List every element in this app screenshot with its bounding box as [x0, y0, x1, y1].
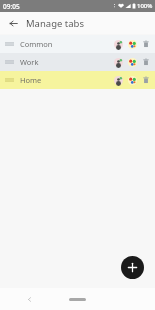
button[interactable]: Delete tab: [139, 37, 153, 51]
staticText: Home: [20, 75, 111, 85]
button[interactable]: Change color: [125, 55, 139, 69]
button[interactable]: Home: [0, 71, 155, 89]
staticText: 09:05: [3, 2, 20, 11]
button[interactable]: Back: [4, 14, 22, 32]
button[interactable]: Account: [111, 55, 125, 69]
staticText: 100%: [137, 2, 153, 10]
button[interactable]: Back: [21, 291, 37, 307]
button[interactable]: Change color: [125, 37, 139, 51]
button[interactable]: Home: [69, 298, 86, 301]
staticText: Manage tabs: [26, 17, 84, 30]
button[interactable]: Account: [111, 73, 125, 87]
button[interactable]: Work: [0, 53, 155, 71]
staticText: Work: [20, 57, 111, 67]
button[interactable]: Change color: [125, 73, 139, 87]
staticText: Common: [20, 39, 111, 49]
button[interactable]: Account: [111, 37, 125, 51]
button[interactable]: Delete tab: [139, 73, 153, 87]
button[interactable]: Add tab: [121, 256, 144, 279]
button[interactable]: Common: [0, 35, 155, 53]
button[interactable]: Delete tab: [139, 55, 153, 69]
